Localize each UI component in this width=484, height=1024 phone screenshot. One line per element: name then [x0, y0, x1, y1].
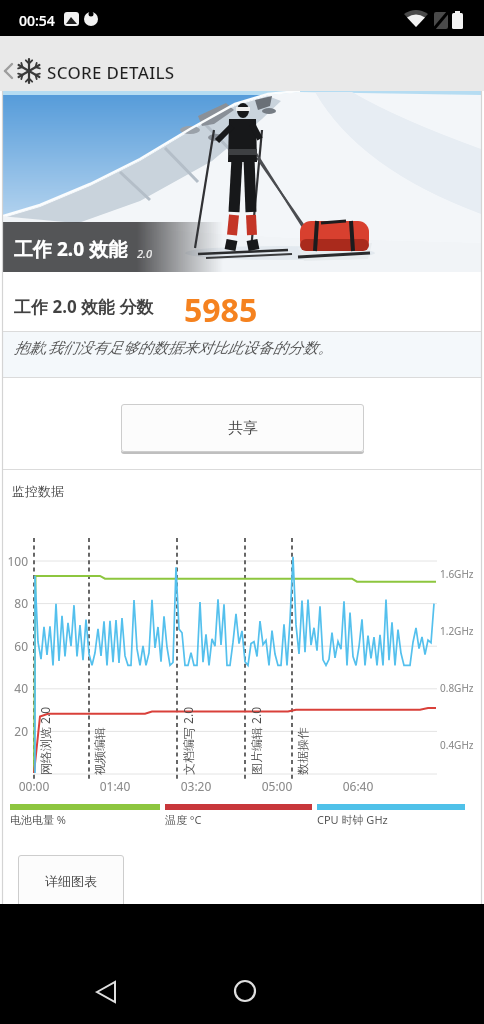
staticText: 数据操作: [295, 727, 310, 775]
staticText: 2.0: [137, 246, 152, 261]
staticText: 共享: [228, 419, 258, 438]
staticText: 图片编辑 2.0: [248, 706, 264, 775]
staticText: 工作 2.0 效能 分数: [14, 295, 154, 318]
staticText: 05:00: [249, 778, 305, 800]
staticText: 00:00: [6, 778, 62, 800]
staticText: 20: [2, 723, 28, 745]
staticText: 电池电量 %: [10, 812, 67, 827]
staticText: SCORE DETAILS: [47, 61, 175, 84]
staticText: 06:40: [330, 778, 386, 800]
staticText: 1.6GHz: [440, 567, 474, 581]
staticText: 40: [2, 680, 28, 702]
staticText: 文档编写 2.0: [180, 706, 196, 775]
staticText: 0.8GHz: [440, 681, 474, 695]
staticText: 01:40: [87, 778, 143, 800]
staticText: CPU 时钟 GHz: [317, 812, 388, 827]
staticText: 60: [2, 638, 28, 660]
staticText: 详细图表: [45, 873, 97, 889]
staticText: 00:54: [19, 11, 55, 30]
staticText: 1.2GHz: [440, 624, 474, 638]
staticText: 网络浏览 2.0: [37, 706, 53, 775]
staticText: 03:20: [168, 778, 224, 800]
staticText: 视频编辑: [92, 727, 107, 775]
staticText: 80: [2, 595, 28, 617]
staticText: 抱歉,我们没有足够的数据来对比此设备的分数。: [14, 337, 333, 357]
staticText: 0.4GHz: [440, 738, 474, 752]
staticText: 工作 2.0 效能: [14, 236, 127, 262]
staticText: 监控数据: [12, 483, 64, 499]
staticText: 温度 °C: [165, 812, 202, 827]
staticText: 100: [2, 553, 28, 575]
staticText: 5985: [184, 288, 258, 332]
